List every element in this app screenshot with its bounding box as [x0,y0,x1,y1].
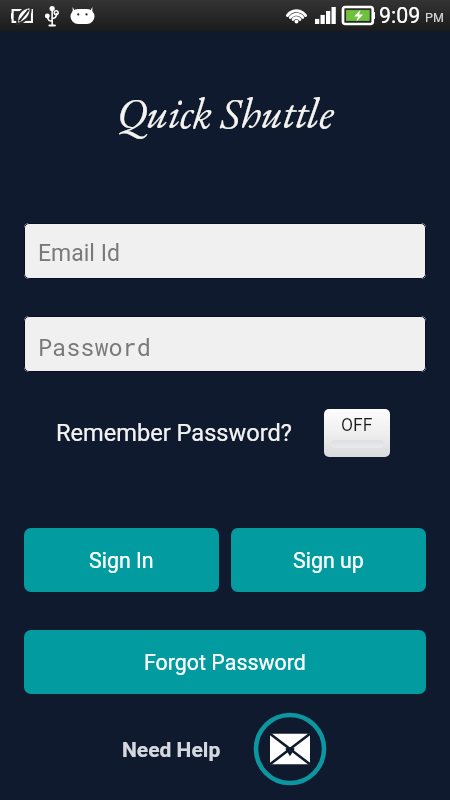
staticText: Email Id [38,240,120,267]
staticText: Sign up [293,548,364,573]
staticText: Quick Shuttle [117,85,334,141]
staticText: PM [425,10,444,25]
staticText: Remember Password? [56,419,292,447]
staticText: 9:09 [379,3,421,28]
staticText: Forgot Password [144,650,306,675]
staticText: OFF [341,415,373,436]
button[interactable]: Email support [252,711,328,787]
staticText: Need Help [122,738,221,763]
staticText: Sign In [89,548,154,573]
button[interactable]: Forgot Password [24,630,426,694]
staticText: Password [38,331,151,362]
button[interactable]: Need Help [122,738,221,763]
button[interactable]: Password [24,316,426,372]
button[interactable]: Sign up [231,528,426,592]
button[interactable]: Sign In [24,528,219,592]
button[interactable]: OFF [324,409,390,457]
button[interactable]: Email Id [24,223,426,279]
